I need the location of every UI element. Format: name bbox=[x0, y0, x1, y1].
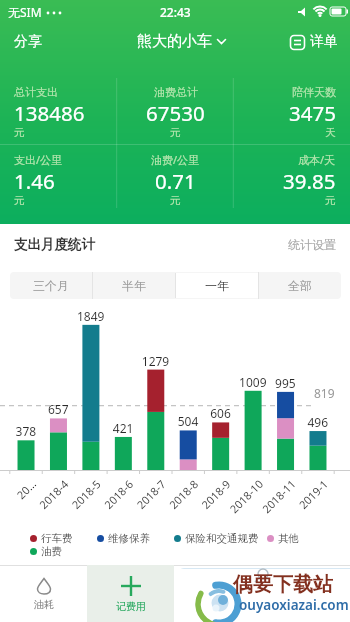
button[interactable]: 油费总计 bbox=[146, 85, 205, 140]
button[interactable]: 保险和交通规费 bbox=[174, 532, 259, 545]
button[interactable]: 详单 bbox=[290, 33, 338, 51]
staticText: 偶要下载站 bbox=[233, 572, 333, 597]
staticText: 元 bbox=[170, 194, 181, 207]
staticText: 油费总计 bbox=[154, 85, 198, 99]
staticText: 支出/公里 bbox=[14, 152, 63, 167]
staticText: 半年 bbox=[122, 278, 146, 293]
staticText: 陪伴天数 bbox=[292, 85, 336, 99]
staticText: 其他 bbox=[278, 532, 299, 545]
staticText: 发现 bbox=[208, 598, 228, 611]
button[interactable]: 全部 bbox=[258, 272, 341, 299]
staticText: 行车费 bbox=[41, 532, 73, 545]
button[interactable]: 油耗 bbox=[0, 565, 87, 622]
staticText: 熊大的小车 bbox=[137, 32, 212, 51]
button[interactable]: 行车费 bbox=[30, 532, 73, 545]
staticText: 详单 bbox=[310, 33, 338, 51]
button[interactable]: 发现 bbox=[174, 565, 262, 622]
button[interactable]: 记费用 bbox=[87, 565, 174, 622]
staticText: 三个月 bbox=[33, 278, 69, 293]
button[interactable]: 半年 bbox=[92, 272, 175, 299]
staticText: 一年 bbox=[205, 278, 229, 293]
staticText: 元 bbox=[14, 126, 25, 139]
staticText: 设置 bbox=[296, 598, 316, 611]
button[interactable]: 一年 bbox=[175, 273, 258, 298]
button[interactable]: 维修保养 bbox=[97, 532, 150, 545]
button[interactable]: 陪伴天数 bbox=[289, 85, 336, 140]
staticText: 元 bbox=[325, 194, 336, 207]
staticText: 天 bbox=[325, 126, 336, 139]
staticText: 0.71 bbox=[155, 167, 196, 195]
staticText: 记费用 bbox=[116, 600, 146, 613]
staticText: 3475 bbox=[289, 99, 336, 127]
button[interactable]: 总计支出 bbox=[14, 85, 85, 140]
button[interactable]: 油费 bbox=[30, 545, 62, 558]
staticText: ouyaoxiazai.com bbox=[239, 596, 349, 614]
staticText: 无SIM bbox=[8, 4, 42, 20]
button[interactable]: 分享 bbox=[14, 33, 42, 51]
button[interactable]: 油费/公里 bbox=[151, 152, 200, 208]
staticText: 维修保养 bbox=[108, 532, 150, 545]
button[interactable]: 三个月 bbox=[10, 272, 92, 299]
staticText: 油费 bbox=[41, 545, 62, 558]
staticText: 保险和交通规费 bbox=[185, 532, 259, 545]
staticText: 总计支出 bbox=[14, 85, 58, 99]
staticText: 22:43 bbox=[160, 4, 191, 20]
staticText: 支出月度统计 bbox=[14, 236, 95, 253]
button[interactable]: 支出/公里 bbox=[14, 152, 63, 208]
staticText: 成本/天 bbox=[298, 152, 336, 167]
staticText: 39.85 bbox=[283, 167, 336, 195]
staticText: 1.46 bbox=[14, 167, 55, 195]
button[interactable]: 统计设置 bbox=[288, 237, 336, 252]
staticText: 138486 bbox=[14, 99, 85, 127]
staticText: 元 bbox=[14, 194, 25, 207]
staticText: 油费/公里 bbox=[151, 152, 200, 167]
button[interactable]: 成本/天 bbox=[283, 152, 336, 208]
staticText: 67530 bbox=[146, 99, 205, 127]
button[interactable]: 其他 bbox=[267, 532, 299, 545]
staticText: 油耗 bbox=[34, 598, 54, 611]
button[interactable]: 设置 bbox=[262, 565, 350, 622]
button[interactable]: 熊大的小车 bbox=[137, 32, 226, 51]
staticText: 元 bbox=[170, 126, 181, 139]
staticText: 全部 bbox=[288, 278, 312, 293]
